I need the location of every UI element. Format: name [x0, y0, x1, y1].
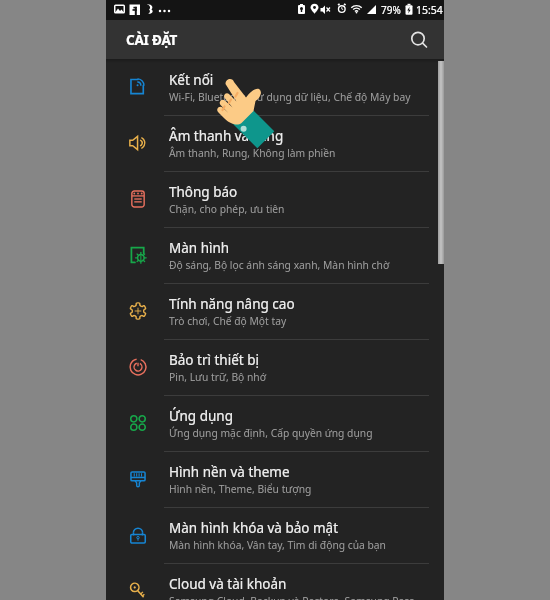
staticText: Màn hình khóa, Vân tay, Tìm di động của … — [169, 538, 386, 552]
staticText: Ứng dụng mặc định, Cấp quyền ứng dụng — [169, 426, 373, 440]
staticText: Ứng dụng — [169, 407, 233, 425]
staticText: 79% — [381, 3, 401, 17]
staticText: Cloud và tài khoản — [169, 575, 287, 593]
staticText: Âm thanh và rung — [169, 127, 284, 145]
button[interactable]: Màn hình — [106, 227, 444, 283]
button[interactable]: Hình nền và theme — [106, 451, 444, 507]
staticText: Pin, Lưu trữ, Bộ nhớ — [169, 370, 267, 384]
button[interactable]: Thông báo — [106, 171, 444, 227]
staticText: Âm thanh, Rung, Không làm phiền — [169, 146, 336, 160]
staticText: Độ sáng, Bộ lọc ánh sáng xanh, Màn hình … — [169, 258, 390, 272]
staticText: Kết nối — [169, 71, 214, 89]
staticText: CÀI ĐẶT — [126, 31, 178, 49]
staticText: Samsung Cloud, Backup và Restore, Samsun… — [169, 594, 415, 600]
staticText: Wi-Fi, Bluetooth, Sử dụng dữ liệu, Chế đ… — [169, 90, 411, 104]
button[interactable]: Kết nối — [106, 59, 444, 115]
button[interactable]: Âm thanh và rung — [106, 115, 444, 171]
staticText: Hình nền, Theme, Biểu tượng — [169, 482, 312, 496]
button[interactable]: Màn hình khóa và bảo mật — [106, 507, 444, 563]
staticText: Màn hình khóa và bảo mật — [169, 519, 339, 537]
button[interactable]: Bảo trì thiết bị — [106, 339, 444, 395]
staticText: Tính năng nâng cao — [169, 295, 295, 313]
staticText: Trò chơi, Chế độ Một tay — [169, 314, 287, 328]
button[interactable]: Ứng dụng — [106, 395, 444, 451]
staticText: Hình nền và theme — [169, 463, 290, 481]
button[interactable]: Search — [404, 25, 434, 55]
staticText: Chặn, cho phép, ưu tiên — [169, 202, 285, 216]
staticText: Bảo trì thiết bị — [169, 351, 259, 369]
staticText: Thông báo — [169, 183, 238, 201]
staticText: 15:54 — [416, 3, 443, 17]
staticText: Màn hình — [169, 239, 230, 257]
button[interactable]: Tính năng nâng cao — [106, 283, 444, 339]
button[interactable]: Cloud và tài khoản — [106, 563, 444, 600]
